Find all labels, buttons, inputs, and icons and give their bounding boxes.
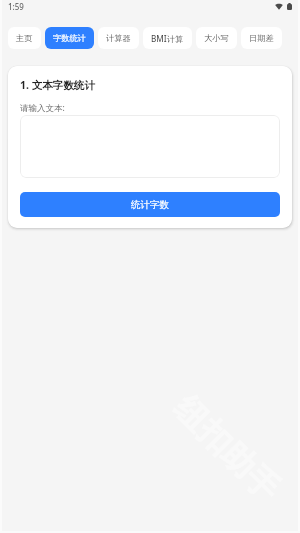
- staticText: 1:59: [8, 1, 24, 12]
- staticText: 计算器: [106, 33, 131, 43]
- staticText: 字数统计: [53, 33, 86, 43]
- staticText: 主页: [16, 33, 33, 43]
- staticText: 大小写: [204, 33, 229, 43]
- button[interactable]: 主页: [8, 27, 41, 49]
- staticText: BMI计算: [151, 33, 184, 44]
- button[interactable]: 计算器: [98, 27, 139, 49]
- button[interactable]: 请输入文本: [20, 115, 280, 178]
- staticText: 日期差: [249, 33, 274, 43]
- staticText: 统计字数: [131, 199, 169, 211]
- other: Battery: [287, 3, 292, 10]
- button[interactable]: BMI计算: [143, 27, 192, 49]
- other: Wi-Fi: [275, 3, 283, 10]
- button[interactable]: 大小写: [196, 27, 237, 49]
- button[interactable]: 统计字数: [20, 192, 280, 217]
- staticText: 1. 文本字数统计: [20, 78, 95, 92]
- button[interactable]: 字数统计: [45, 27, 94, 49]
- staticText: 请输入文本:: [20, 102, 65, 114]
- button[interactable]: 日期差: [241, 27, 282, 49]
